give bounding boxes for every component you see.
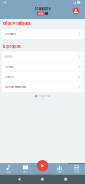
button[interactable]: DIRECT — [17, 163, 34, 174]
staticText: Propulsé par — [39, 95, 51, 97]
button[interactable]: Account — [71, 6, 81, 16]
staticText: Edito — [4, 55, 12, 58]
button[interactable]: MENU — [68, 163, 85, 174]
staticText: francetv — [34, 6, 50, 11]
button[interactable]: Contact — [2, 62, 83, 72]
button[interactable]: Back — [15, 175, 23, 184]
button[interactable]: Recent apps — [62, 175, 70, 183]
staticText: RADIO — [6, 171, 10, 173]
staticText: v 4.2.1 — [40, 98, 44, 100]
button[interactable]: Home — [38, 175, 46, 183]
staticText: info — [37, 12, 43, 15]
button[interactable]: Glossaire — [2, 29, 83, 39]
button[interactable]: Crédits — [2, 72, 83, 82]
staticText: Crédits — [4, 75, 13, 78]
button[interactable]: GUIDE — [51, 163, 68, 174]
staticText: Contact — [4, 65, 13, 68]
staticText: GUIDE — [57, 171, 61, 173]
staticText: Infos Pratiques — [3, 21, 31, 26]
staticText: DIRECT — [23, 171, 28, 173]
button[interactable]: RADIO — [0, 163, 17, 174]
staticText: Notices Techniques — [4, 86, 25, 89]
staticText: MENU — [74, 171, 79, 173]
button[interactable]: Edito — [2, 52, 83, 61]
staticText: 7:58 — [2, 1, 6, 4]
staticText: À propos — [3, 44, 21, 49]
button[interactable]: Play — [36, 159, 49, 172]
staticText: Glossaire — [4, 33, 15, 36]
button[interactable]: Notices Techniques — [2, 82, 83, 92]
